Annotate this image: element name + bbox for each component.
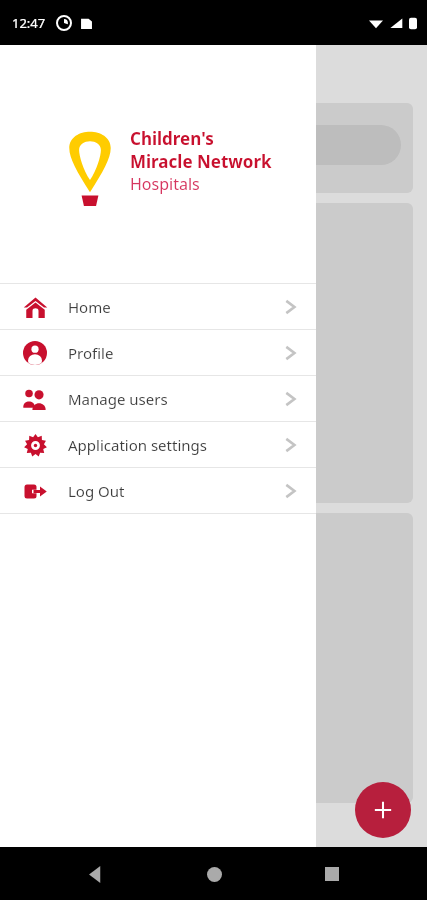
button[interactable]: Log Out: [0, 468, 316, 513]
button[interactable]: Home: [0, 284, 316, 329]
staticText: 12:47: [12, 14, 46, 32]
staticText: Manage users: [68, 389, 168, 409]
button[interactable]: Back: [71, 850, 119, 898]
staticText: Home: [68, 297, 111, 317]
button[interactable]: Recents: [308, 850, 356, 898]
staticText: Hospitals: [130, 173, 200, 195]
staticText: Profile: [68, 343, 114, 363]
staticText: Miracle Network: [130, 150, 272, 173]
staticText: Children's: [130, 127, 214, 150]
button[interactable]: Profile: [0, 330, 316, 375]
staticText: Application settings: [68, 435, 207, 455]
button[interactable]: Application settings: [0, 422, 316, 467]
button[interactable]: Home: [190, 850, 238, 898]
button[interactable]: Add: [355, 782, 411, 838]
staticText: Log Out: [68, 481, 125, 501]
button[interactable]: Manage users: [0, 376, 316, 421]
